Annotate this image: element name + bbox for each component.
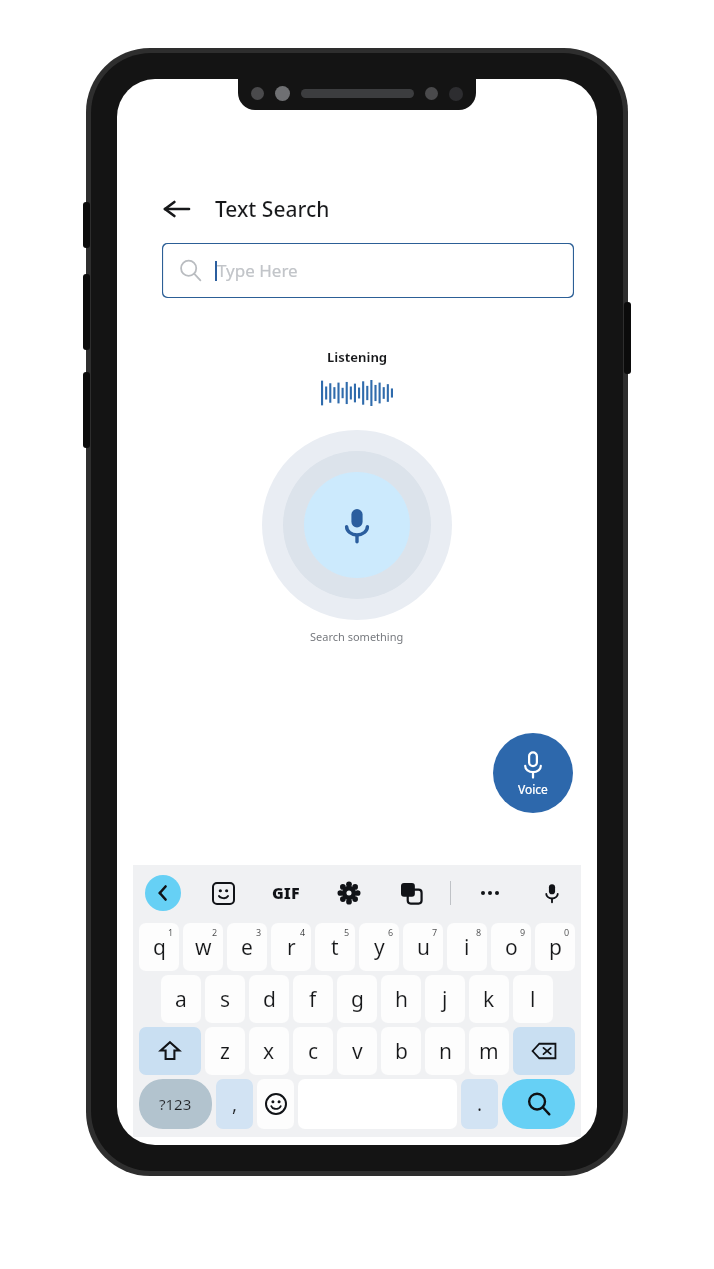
staticText: b <box>395 1037 408 1066</box>
button[interactable]: a <box>161 975 201 1023</box>
button[interactable]: Settings <box>332 876 366 910</box>
button[interactable]: ?123 <box>139 1079 212 1129</box>
staticText: Listening <box>327 348 388 366</box>
button[interactable]: Shift <box>139 1027 201 1075</box>
staticText: v <box>352 1037 363 1066</box>
staticText: j <box>442 985 448 1014</box>
button[interactable]: f <box>293 975 333 1023</box>
button[interactable]: y <box>359 923 399 971</box>
button[interactable]: Search <box>502 1079 575 1129</box>
staticText: q <box>153 933 166 962</box>
staticText: 3 <box>256 926 262 938</box>
staticText: i <box>464 933 470 962</box>
staticText: 1 <box>168 926 174 938</box>
button[interactable]: z <box>205 1027 245 1075</box>
button[interactable]: l <box>513 975 553 1023</box>
staticText: s <box>220 985 231 1014</box>
staticText: m <box>479 1037 499 1066</box>
button[interactable]: v <box>337 1027 377 1075</box>
staticText: g <box>351 985 364 1014</box>
staticText: 8 <box>476 926 482 938</box>
staticText: GIF <box>272 882 300 904</box>
staticText: r <box>287 933 296 962</box>
button[interactable]: x <box>249 1027 289 1075</box>
button[interactable]: o <box>491 923 531 971</box>
staticText: w <box>195 933 212 962</box>
staticText: d <box>263 985 276 1014</box>
staticText: p <box>549 933 562 962</box>
staticText: 9 <box>520 926 526 938</box>
button[interactable]: , <box>216 1079 253 1129</box>
staticText: ?123 <box>159 1094 192 1114</box>
staticText: n <box>439 1037 452 1066</box>
staticText: . <box>477 1091 483 1117</box>
button[interactable]: Type Here <box>162 243 574 298</box>
staticText: 4 <box>300 926 306 938</box>
button[interactable]: Back <box>155 187 199 231</box>
button[interactable]: Translate <box>394 876 428 910</box>
staticText: 6 <box>388 926 394 938</box>
button[interactable]: Voice input <box>262 430 452 620</box>
button[interactable]: Voice <box>493 733 573 813</box>
staticText: , <box>232 1091 238 1117</box>
staticText: u <box>417 933 430 962</box>
staticText: 2 <box>212 926 218 938</box>
button[interactable]: d <box>249 975 289 1023</box>
staticText: y <box>374 933 385 962</box>
button[interactable]: Stickers <box>206 876 240 910</box>
button[interactable]: r <box>271 923 311 971</box>
button[interactable]: c <box>293 1027 333 1075</box>
button[interactable]: u <box>403 923 443 971</box>
button[interactable]: More options <box>473 876 507 910</box>
staticText: Type Here <box>217 259 298 282</box>
button[interactable]: m <box>469 1027 509 1075</box>
staticText: 5 <box>344 926 350 938</box>
staticText: f <box>309 985 317 1014</box>
button[interactable]: Voice typing <box>535 876 569 910</box>
staticText: x <box>263 1037 275 1066</box>
staticText: h <box>395 985 408 1014</box>
button[interactable]: GIF <box>268 878 304 908</box>
staticText: o <box>505 933 518 962</box>
staticText: 0 <box>564 926 570 938</box>
button[interactable]: Emoji <box>257 1079 294 1129</box>
staticText: Voice <box>518 781 548 797</box>
button[interactable]: Backspace <box>513 1027 575 1075</box>
button[interactable]: w <box>183 923 223 971</box>
staticText: t <box>331 933 339 962</box>
staticText: c <box>308 1037 319 1066</box>
button[interactable]: Back <box>145 875 181 911</box>
button[interactable]: i <box>447 923 487 971</box>
staticText: z <box>220 1037 230 1066</box>
button[interactable]: s <box>205 975 245 1023</box>
button[interactable]: n <box>425 1027 465 1075</box>
staticText: Search something <box>310 629 404 644</box>
button[interactable]: j <box>425 975 465 1023</box>
button[interactable]: p <box>535 923 575 971</box>
button[interactable]: . <box>461 1079 498 1129</box>
staticText: e <box>241 933 253 962</box>
button[interactable]: g <box>337 975 377 1023</box>
staticText: a <box>175 985 187 1014</box>
button[interactable]: k <box>469 975 509 1023</box>
staticText: l <box>530 985 536 1014</box>
staticText: k <box>483 985 495 1014</box>
button[interactable]: b <box>381 1027 421 1075</box>
button[interactable]: e <box>227 923 267 971</box>
staticText: Text Search <box>215 195 330 224</box>
button[interactable]: q <box>139 923 179 971</box>
button[interactable]: h <box>381 975 421 1023</box>
button[interactable]: t <box>315 923 355 971</box>
staticText: 7 <box>432 926 438 938</box>
